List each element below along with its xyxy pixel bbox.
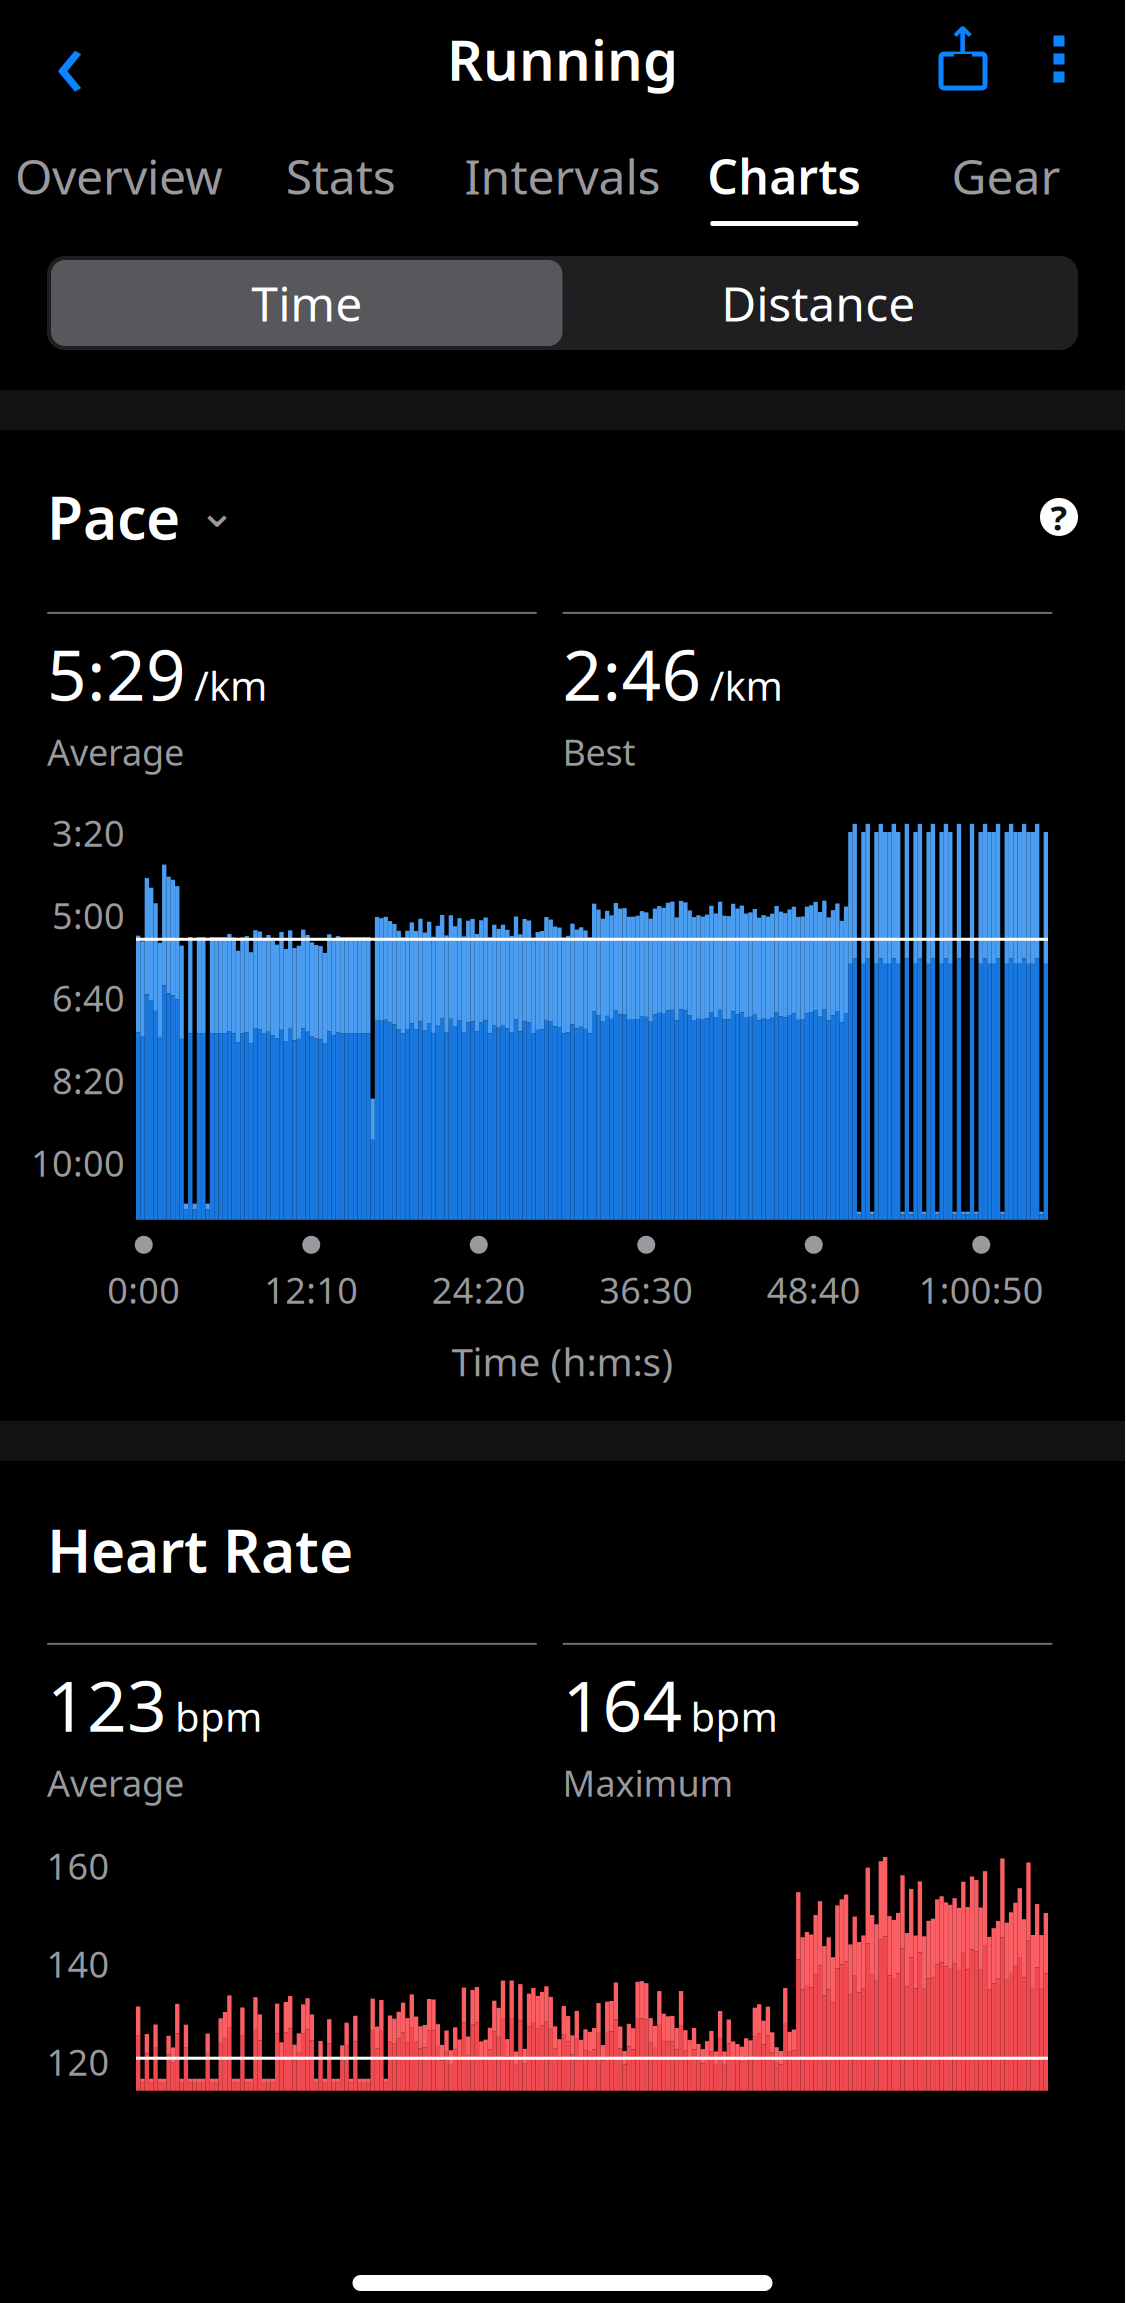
button[interactable]: Charts: [673, 118, 895, 238]
staticText: Maximum: [562, 1759, 733, 1807]
button[interactable]: More options: [1011, 7, 1107, 111]
staticText: Heart Rate: [47, 1511, 353, 1589]
staticText: bpm: [690, 1690, 777, 1743]
staticText: 5:00: [52, 891, 125, 939]
staticText: bpm: [175, 1690, 262, 1743]
staticText: 3:20: [52, 809, 125, 857]
staticText: Running: [447, 22, 678, 96]
staticText: Average: [47, 728, 184, 776]
staticText: Gear: [952, 144, 1061, 208]
staticText: 5:29: [47, 628, 186, 720]
staticText: 10:00: [31, 1139, 125, 1187]
staticText: 6:40: [52, 974, 125, 1022]
staticText: 36:30: [599, 1266, 693, 1314]
button[interactable]: Pace: [47, 478, 236, 556]
staticText: 123: [47, 1659, 167, 1751]
button[interactable]: Time: [51, 260, 562, 346]
staticText: 164: [562, 1659, 682, 1751]
staticText: 0:00: [107, 1266, 180, 1314]
button[interactable]: Share: [915, 7, 1011, 111]
button[interactable]: Stats: [230, 118, 452, 238]
staticText: 12:10: [264, 1266, 358, 1314]
staticText: Overview: [15, 144, 223, 208]
staticText: 140: [46, 1940, 109, 1988]
staticText: Stats: [286, 144, 396, 208]
button[interactable]: Gear: [895, 118, 1117, 238]
staticText: ‹: [54, 0, 85, 124]
staticText: 120: [46, 2038, 109, 2086]
staticText: Charts: [707, 144, 861, 208]
button[interactable]: Intervals: [452, 118, 673, 238]
staticText: Time: [251, 271, 362, 335]
staticText: 2:46: [562, 628, 701, 720]
staticText: 8:20: [52, 1056, 125, 1104]
staticText: Intervals: [464, 144, 660, 208]
staticText: /km: [194, 659, 267, 712]
button[interactable]: Distance: [562, 260, 1074, 346]
staticText: 160: [46, 1842, 109, 1890]
staticText: 1:00:50: [919, 1266, 1044, 1314]
staticText: Average: [47, 1759, 184, 1807]
staticText: Distance: [721, 271, 915, 335]
staticText: ↑: [946, 19, 980, 65]
staticText: 48:40: [767, 1266, 861, 1314]
staticText: Pace: [47, 478, 180, 556]
button[interactable]: Back: [18, 7, 122, 111]
staticText: ?: [1050, 494, 1067, 540]
staticText: Best: [562, 728, 635, 776]
button[interactable]: Help: [1040, 498, 1078, 536]
staticText: ⌄: [198, 485, 236, 537]
staticText: 24:20: [432, 1266, 526, 1314]
staticText: Time (h:m:s): [451, 1336, 673, 1387]
button[interactable]: Overview: [8, 118, 230, 238]
staticText: /km: [709, 659, 782, 712]
